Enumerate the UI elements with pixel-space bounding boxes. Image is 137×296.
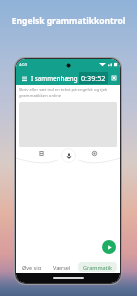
staticText: 0:39:52: [81, 73, 106, 83]
button[interactable]: 0:39:52: [79, 72, 108, 84]
button[interactable]: Øve sig: [18, 262, 46, 272]
staticText: Skriv eller sæt ind en tekst på engelsk …: [19, 87, 108, 99]
staticText: 4:03: [19, 62, 27, 67]
button[interactable]: Paste: [90, 149, 99, 158]
button[interactable]: Stop: [111, 75, 117, 81]
button[interactable]: Microphone: [61, 148, 76, 163]
staticText: Grammatik: [83, 264, 112, 270]
button[interactable]: Grammatik: [78, 262, 117, 272]
staticText: Engelsk grammatikkontrol: [0, 15, 137, 27]
button[interactable]: Værsel: [49, 262, 75, 272]
staticText: Øve sig: [22, 264, 42, 270]
button[interactable]: Menu: [20, 74, 28, 82]
button[interactable]: Play: [102, 240, 116, 254]
staticText: I sammenhæng: [31, 74, 78, 82]
staticText: Værsel: [53, 264, 71, 270]
button[interactable]: Keyboard: [37, 149, 46, 158]
